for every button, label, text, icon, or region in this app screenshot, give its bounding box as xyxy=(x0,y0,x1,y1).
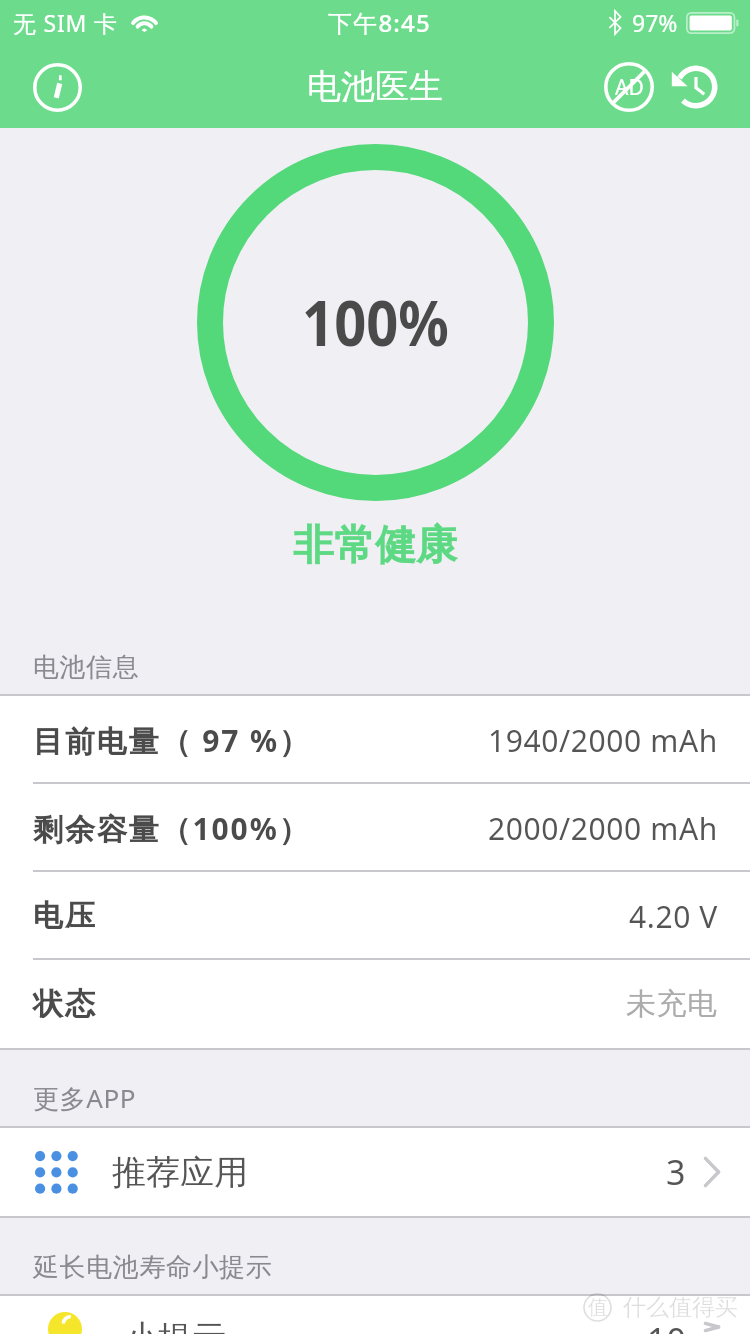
button[interactable]: History xyxy=(658,53,726,121)
staticText: 更多APP xyxy=(33,1080,137,1116)
staticText: 未充电 xyxy=(626,985,718,1023)
staticText: 97% xyxy=(632,7,678,38)
button[interactable]: Info xyxy=(23,53,91,121)
staticText: 4.20 V xyxy=(629,896,718,937)
staticText: 3 xyxy=(666,1149,686,1195)
button[interactable]: 推荐应用 xyxy=(0,1128,750,1216)
button[interactable]: Remove ads xyxy=(595,53,663,121)
button[interactable]: 电压 xyxy=(0,872,750,960)
staticText: 小提示 xyxy=(124,1317,226,1334)
button[interactable]: 状态 xyxy=(0,960,750,1048)
staticText: 100% xyxy=(302,279,449,365)
staticText: 电池信息 xyxy=(33,651,140,684)
staticText: 延长电池寿命小提示 xyxy=(33,1251,273,1284)
staticText: 电池医生 xyxy=(307,65,443,108)
staticText: 无 SIM 卡 xyxy=(13,7,118,38)
staticText: 状态 xyxy=(33,985,97,1023)
button[interactable]: 小提示 xyxy=(0,1296,750,1334)
staticText: 推荐应用 xyxy=(112,1151,248,1194)
staticText: 1940/2000 mAh xyxy=(488,720,718,761)
staticText: 值 xyxy=(588,1295,608,1320)
button[interactable]: 目前电量（ 97 %） xyxy=(0,696,750,784)
staticText: AD xyxy=(615,73,644,102)
staticText: 剩余容量（100%） xyxy=(33,808,311,849)
button[interactable]: 剩余容量（100%） xyxy=(0,784,750,872)
staticText: 2000/2000 mAh xyxy=(488,808,718,849)
staticText: 电压 xyxy=(33,897,97,935)
staticText: 非常健康 xyxy=(0,520,750,572)
staticText: 目前电量（ 97 %） xyxy=(33,720,311,761)
staticText: 下午8:45 xyxy=(328,6,431,39)
staticText: 什么值得买 xyxy=(623,1293,738,1322)
staticText: 10 xyxy=(647,1317,686,1334)
